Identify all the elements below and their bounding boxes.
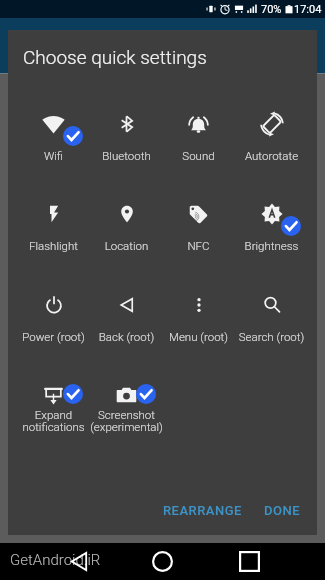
button[interactable]: Wifi: [17, 106, 90, 164]
button[interactable]: Sound: [162, 106, 235, 164]
staticText: Bluetooth: [90, 149, 163, 162]
staticText: Flashlight: [17, 239, 90, 252]
staticText: Choose quick settings: [23, 46, 207, 68]
staticText: DONE: [264, 503, 301, 518]
button[interactable]: Location: [90, 196, 163, 254]
staticText: Power (root): [17, 330, 90, 343]
button[interactable]: Bluetooth: [90, 106, 163, 164]
button[interactable]: Back (root): [90, 287, 163, 345]
staticText: Autorotate: [235, 149, 308, 162]
staticText: 17:04: [294, 3, 322, 16]
button[interactable]: Back: [61, 543, 97, 580]
staticText: Menu (root): [162, 330, 235, 343]
staticText: Brightness: [235, 239, 308, 252]
button[interactable]: Expand notifications: [17, 377, 90, 435]
staticText: Expand notifications: [17, 408, 90, 434]
button[interactable]: Power (root): [17, 287, 90, 345]
button[interactable]: Flashlight: [17, 196, 90, 254]
button[interactable]: Brightness: [235, 196, 308, 254]
staticText: Location: [90, 239, 163, 252]
staticText: Back (root): [90, 330, 163, 343]
staticText: Screenshot (experimental): [90, 408, 163, 434]
button[interactable]: Home: [144, 543, 180, 580]
staticText: Search (root): [235, 330, 308, 343]
button[interactable]: REARRANGE: [158, 496, 247, 525]
staticText: NFC: [162, 239, 235, 252]
staticText: Sound: [162, 149, 235, 162]
staticText: GetAndroid.iR: [10, 551, 101, 569]
button[interactable]: Menu (root): [162, 287, 235, 345]
button[interactable]: NFC: [162, 196, 235, 254]
button[interactable]: Recents: [231, 543, 267, 580]
staticText: 70%: [261, 3, 282, 16]
button[interactable]: Search (root): [235, 287, 308, 345]
button[interactable]: Screenshot (experimental): [90, 377, 163, 435]
button[interactable]: DONE: [259, 496, 306, 525]
staticText: Wifi: [17, 149, 90, 162]
button[interactable]: Autorotate: [235, 106, 308, 164]
staticText: REARRANGE: [163, 503, 242, 518]
